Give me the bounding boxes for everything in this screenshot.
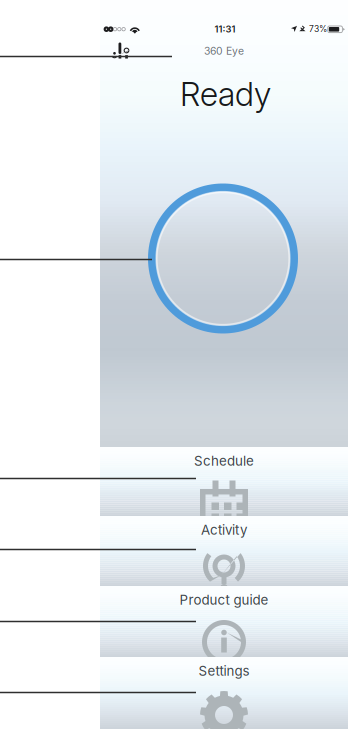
button[interactable]: Activity — [100, 516, 348, 586]
button[interactable]: Machine settings — [106, 38, 136, 64]
staticText: 360 Eye — [204, 45, 244, 57]
staticText: 11:31 — [215, 23, 236, 35]
button[interactable]: Settings — [100, 657, 348, 729]
staticText: Activity — [201, 522, 247, 538]
staticText: Product guide — [179, 592, 268, 608]
staticText: Schedule — [194, 453, 254, 469]
button[interactable]: Schedule — [100, 447, 348, 516]
button[interactable]: Product guide — [100, 586, 348, 657]
staticText: 73% — [309, 24, 327, 34]
staticText: Settings — [198, 663, 249, 679]
staticText: Ready — [180, 74, 271, 114]
